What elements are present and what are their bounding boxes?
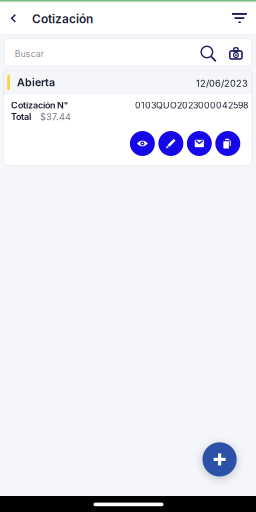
button[interactable]: Ver — [130, 131, 155, 156]
staticText: 12/06/2023 — [196, 78, 248, 89]
button[interactable]: Nueva cotización — [202, 442, 237, 476]
button[interactable]: Duplicar — [215, 131, 240, 156]
button[interactable]: Editar — [158, 131, 183, 156]
staticText: $37.44 — [40, 111, 71, 122]
button[interactable]: Filtrar — [228, 7, 250, 29]
staticText: Total — [11, 111, 31, 122]
staticText: Buscar — [15, 49, 44, 59]
button[interactable]: Buscar — [201, 46, 217, 62]
button[interactable]: Abierta — [3, 70, 252, 166]
button[interactable]: Atrás — [5, 7, 21, 29]
button[interactable]: Enviar por correo — [187, 131, 212, 156]
button[interactable]: Buscar — [4, 38, 252, 66]
staticText: 0103QUO2023000042598 — [135, 100, 248, 111]
button[interactable]: Escanear — [230, 48, 243, 60]
staticText: Abierta — [17, 76, 55, 89]
staticText: Cotización N° — [11, 100, 68, 111]
staticText: Cotización — [32, 12, 93, 26]
